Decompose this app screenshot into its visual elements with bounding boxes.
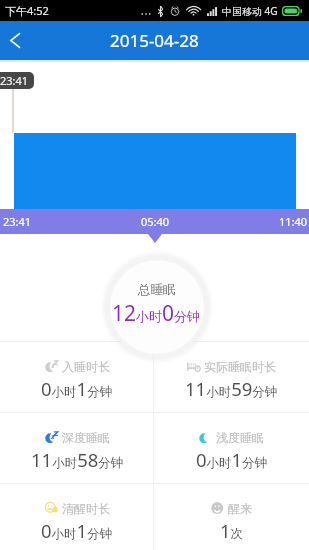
staticText: 23:41 (0, 73, 29, 88)
staticText: 0小时1分钟 (41, 376, 113, 401)
button[interactable]: 入睡时长 (0, 341, 154, 412)
button[interactable]: 浅度睡眠 (154, 412, 309, 483)
button[interactable]: 深度睡眠 (0, 412, 154, 483)
staticText: 12小时0分钟 (112, 299, 201, 328)
staticText: 中国移动 4G (222, 4, 278, 18)
staticText: 23:41 (3, 214, 32, 229)
staticText: 11小时58分钟 (31, 447, 124, 472)
button[interactable]: Back (0, 21, 29, 60)
staticText: 深度睡眠 (62, 430, 110, 445)
button[interactable]: 醒来 (154, 483, 309, 550)
staticText: 11:40 (279, 214, 308, 229)
staticText: 0小时1分钟 (196, 447, 268, 472)
button[interactable]: 实际睡眠时长 (154, 341, 309, 412)
staticText: 总睡眠 (138, 282, 176, 298)
staticText: 浅度睡眠 (216, 430, 264, 445)
staticText: 05:40 (141, 214, 170, 229)
staticText: 醒来 (228, 501, 252, 516)
button[interactable]: 清醒时长 (0, 483, 154, 550)
staticText: 1次 (220, 518, 244, 543)
staticText: 清醒时长 (62, 501, 110, 516)
staticText: 2015-04-28 (110, 29, 199, 52)
staticText: 实际睡眠时长 (204, 359, 276, 374)
staticText: 11小时59分钟 (185, 376, 278, 401)
staticText: 入睡时长 (62, 359, 110, 374)
staticText: 0小时1分钟 (41, 518, 113, 543)
staticText: 下午4:52 (5, 3, 49, 18)
